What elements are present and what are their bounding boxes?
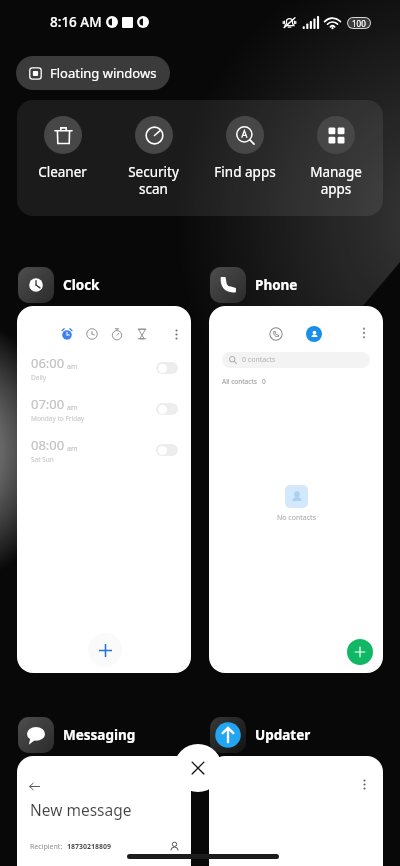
button[interactable]: More options [353, 773, 375, 795]
staticText: 0 contacts [242, 355, 276, 365]
staticText: 0 [262, 377, 266, 386]
button[interactable]: Contacts [209, 306, 383, 673]
staticText: Recipient: [30, 842, 63, 852]
staticText: am [67, 444, 78, 454]
button[interactable]: World clock [80, 322, 104, 346]
button[interactable]: More options [353, 322, 375, 344]
button[interactable]: 06:00 [31, 353, 178, 383]
button[interactable]: Toggle alarm [156, 444, 178, 456]
staticText: Cleaner [38, 163, 87, 181]
button[interactable]: Messaging [18, 717, 136, 753]
staticText: Security scan [128, 163, 179, 198]
button[interactable]: Security scan [108, 116, 199, 198]
button[interactable]: Cleaner [17, 116, 108, 181]
staticText: 07:00 [31, 395, 65, 413]
button[interactable]: Clock [18, 267, 100, 303]
button[interactable]: More options [209, 756, 383, 866]
staticText: Floating windows [50, 64, 157, 82]
staticText: am [67, 362, 78, 372]
button[interactable]: Toggle alarm [156, 403, 178, 415]
staticText: Find apps [214, 163, 276, 181]
staticText: Daily [31, 373, 47, 382]
staticText: Messaging [63, 726, 136, 744]
button[interactable]: Close all apps [174, 744, 222, 792]
staticText: Manage apps [310, 163, 362, 198]
button[interactable]: 0 contacts [222, 352, 370, 368]
button[interactable]: Toggle alarm [156, 362, 178, 374]
staticText: am [67, 403, 78, 413]
button[interactable]: 08:00 [31, 435, 178, 465]
staticText: 06:00 [31, 354, 65, 372]
staticText: Updater [255, 726, 311, 744]
staticText: Clock [63, 276, 100, 294]
staticText: Phone [255, 276, 298, 294]
button[interactable]: Stopwatch [105, 322, 129, 346]
button[interactable]: Contacts [306, 326, 322, 342]
button[interactable]: Alarm [55, 322, 79, 346]
staticText: 8:16 AM [50, 13, 102, 31]
button[interactable]: 07:00 [31, 394, 178, 424]
staticText: No contacts [277, 513, 316, 523]
button[interactable]: Add contact [347, 639, 373, 665]
button[interactable]: Phone [210, 267, 298, 303]
button[interactable]: Back [25, 777, 43, 795]
staticText: All contacts [222, 377, 257, 386]
button[interactable]: Add alarm [88, 633, 122, 667]
button[interactable]: Find apps [199, 116, 290, 181]
button[interactable]: Alarm [17, 306, 191, 673]
button[interactable]: Manage apps [290, 116, 381, 198]
button[interactable]: More options [164, 322, 188, 346]
staticText: Sat Sun [31, 455, 54, 464]
staticText: Monday to Friday [31, 414, 85, 423]
staticText: 100 [352, 18, 366, 28]
staticText: 08:00 [31, 436, 65, 454]
button[interactable]: Timer [130, 322, 154, 346]
staticText: 18730218809 [67, 842, 112, 852]
button[interactable]: Back [17, 756, 191, 866]
button[interactable]: Updater [210, 717, 311, 753]
button[interactable]: Floating windows [16, 56, 170, 90]
staticText: New message [30, 799, 132, 820]
